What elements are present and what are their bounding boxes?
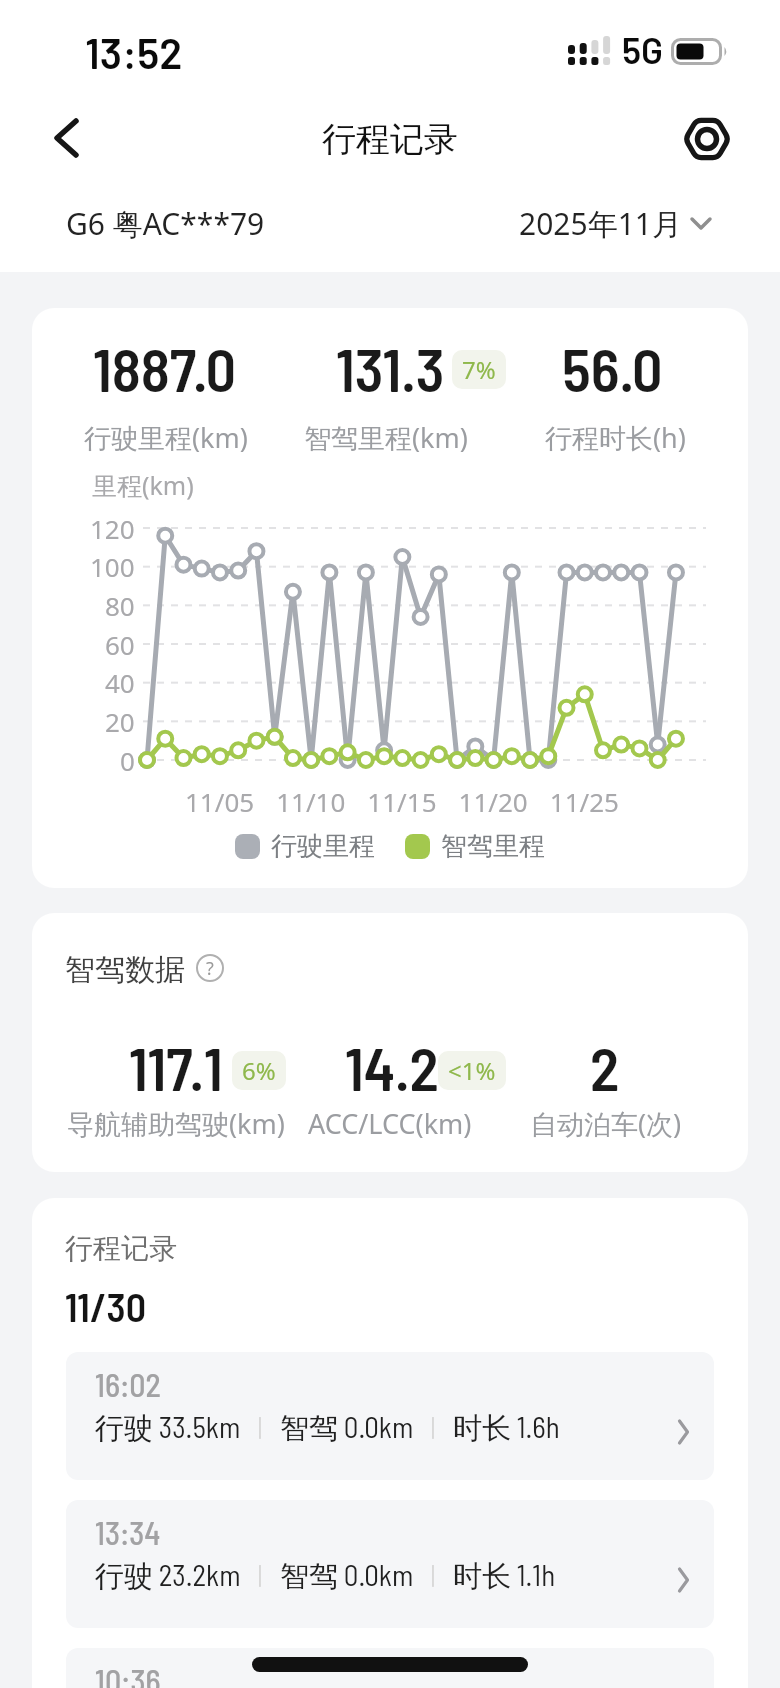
staticText: 丨 (249, 1414, 272, 1443)
button[interactable]: 16:02 (66, 1352, 714, 1480)
staticText: 13:34 (95, 1513, 161, 1551)
staticText: 智驾里程 (441, 830, 545, 863)
staticText: 行程时长(h) (545, 419, 686, 456)
staticText: 56.0 (562, 332, 663, 404)
button[interactable] (677, 109, 737, 169)
staticText: 13:52 (85, 27, 183, 77)
staticText: G6 粤AC***79 (66, 203, 265, 244)
staticText: 131.3 (336, 332, 445, 404)
button[interactable]: 10:36 (66, 1648, 714, 1688)
button[interactable]: ? (196, 954, 224, 982)
staticText: 6% (242, 1054, 276, 1087)
staticText: 11/30 (65, 1282, 147, 1330)
staticText: 智驾里程(km) (304, 419, 468, 456)
staticText: 行程记录 (322, 118, 458, 161)
staticText: 16:02 (95, 1365, 161, 1403)
staticText: 时长 1.6h (453, 1409, 560, 1447)
staticText: 导航辅助驾驶(km) (67, 1105, 285, 1142)
staticText: 1887.0 (93, 332, 237, 404)
staticText: 2025年11月 (519, 203, 682, 244)
staticText: 7% (462, 353, 496, 386)
staticText: 智驾 0.0km (280, 1557, 414, 1595)
staticText: 丨 (249, 1562, 272, 1591)
staticText: ACC/LCC(km) (308, 1105, 472, 1142)
button[interactable]: 13:34 (66, 1500, 714, 1628)
staticText: 行驶 23.2km (95, 1557, 241, 1595)
staticText: 丨 (422, 1562, 445, 1591)
staticText: 5G (622, 28, 664, 71)
button[interactable] (36, 108, 96, 168)
staticText: 智驾 0.0km (280, 1409, 414, 1447)
staticText: 时长 1.1h (453, 1557, 556, 1595)
button[interactable]: 2025年11月 (519, 203, 712, 244)
staticText: ? (206, 956, 214, 981)
staticText: 14.2 (345, 1031, 439, 1103)
staticText: 丨 (422, 1414, 445, 1443)
staticText: 10:36 (95, 1661, 161, 1688)
staticText: 行程记录 (65, 1231, 177, 1266)
staticText: 智驾数据 (65, 951, 185, 989)
staticText: 自动泊车(次) (530, 1105, 682, 1142)
staticText: <1% (448, 1054, 496, 1087)
staticText: 行驶 33.5km (95, 1409, 241, 1447)
staticText: 117.1 (129, 1031, 223, 1103)
staticText: 行驶里程 (271, 830, 375, 863)
staticText: 2 (590, 1031, 620, 1103)
staticText: 行驶里程(km) (84, 419, 248, 456)
